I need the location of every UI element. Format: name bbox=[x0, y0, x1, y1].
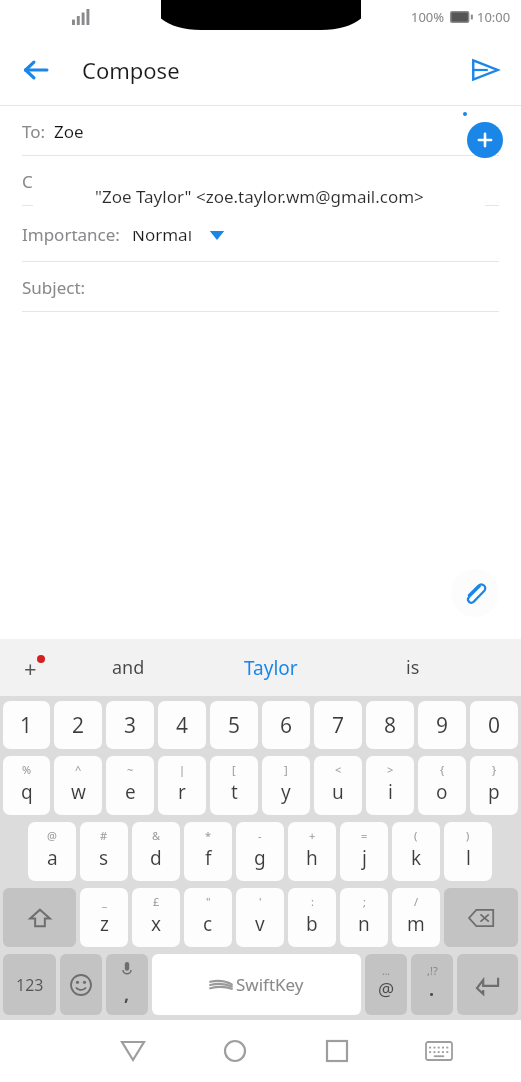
button[interactable]: | bbox=[158, 756, 206, 815]
button[interactable]: = bbox=[340, 822, 388, 881]
button[interactable]: / bbox=[392, 888, 440, 947]
button[interactable]: ,!? bbox=[411, 954, 453, 1015]
button[interactable]: ^ bbox=[54, 756, 102, 815]
staticText: z bbox=[100, 911, 109, 937]
button[interactable]: : bbox=[288, 888, 336, 947]
button[interactable]: ) bbox=[444, 822, 492, 881]
staticText: a bbox=[47, 845, 58, 871]
button[interactable]: Hide keyboard bbox=[388, 1020, 490, 1082]
button[interactable]: Add recipient bbox=[467, 122, 503, 158]
button[interactable]: To: bbox=[0, 106, 521, 156]
button[interactable]: Voice input, comma bbox=[106, 954, 148, 1015]
button[interactable]: ' bbox=[236, 888, 284, 947]
button[interactable]: < bbox=[314, 756, 362, 815]
button[interactable]: 6 bbox=[262, 701, 310, 749]
button[interactable]: } bbox=[470, 756, 518, 815]
staticText: 2 bbox=[72, 711, 85, 740]
staticText: 123 bbox=[16, 974, 44, 996]
staticText: Taylor bbox=[244, 655, 298, 681]
staticText: y bbox=[281, 779, 291, 805]
button[interactable]: & bbox=[132, 822, 180, 881]
staticText: j bbox=[362, 845, 367, 871]
button[interactable]: is bbox=[345, 639, 481, 696]
button[interactable]: _ bbox=[80, 888, 128, 947]
button[interactable]: Back bbox=[12, 46, 60, 94]
button[interactable]: Space bbox=[152, 954, 361, 1015]
button[interactable]: ( bbox=[392, 822, 440, 881]
staticText: SwiftKey bbox=[236, 973, 304, 996]
staticText: t bbox=[231, 779, 238, 805]
staticText: v bbox=[255, 911, 265, 937]
staticText: and bbox=[112, 655, 145, 680]
button[interactable]: % bbox=[3, 756, 50, 815]
button[interactable]: Importance: bbox=[0, 206, 521, 262]
button[interactable]: Taylor bbox=[196, 639, 345, 696]
button[interactable]: 123 bbox=[3, 954, 56, 1015]
button[interactable]: " bbox=[184, 888, 232, 947]
button[interactable]: - bbox=[236, 822, 284, 881]
staticText: Zoe bbox=[54, 120, 84, 143]
button[interactable]: More options bbox=[8, 646, 52, 690]
button[interactable]: Back bbox=[82, 1020, 184, 1082]
staticText: is bbox=[406, 655, 420, 680]
staticText: 5 bbox=[228, 711, 241, 740]
button[interactable]: + bbox=[288, 822, 336, 881]
staticText: # bbox=[100, 828, 108, 843]
staticText: x bbox=[151, 911, 162, 937]
button[interactable]: 4 bbox=[158, 701, 206, 749]
staticText: ; bbox=[363, 894, 366, 909]
staticText: [ bbox=[232, 762, 236, 777]
button[interactable]: Backspace bbox=[444, 888, 518, 947]
button[interactable]: Shift bbox=[3, 888, 76, 947]
button[interactable]: ] bbox=[262, 756, 310, 815]
button[interactable]: 1 bbox=[3, 701, 50, 749]
button[interactable]: £ bbox=[132, 888, 180, 947]
button[interactable]: > bbox=[366, 756, 414, 815]
button[interactable]: 5 bbox=[210, 701, 258, 749]
staticText: { bbox=[440, 762, 445, 777]
staticText: & bbox=[152, 828, 161, 843]
button[interactable]: ... bbox=[365, 954, 407, 1015]
button[interactable]: Subject: bbox=[0, 262, 521, 312]
staticText: > bbox=[387, 762, 394, 777]
staticText: 8 bbox=[384, 711, 397, 740]
button[interactable]: 3 bbox=[106, 701, 154, 749]
button[interactable]: Home bbox=[184, 1020, 286, 1082]
button[interactable]: @ bbox=[28, 822, 76, 881]
staticText: s bbox=[99, 845, 109, 871]
button[interactable]: { bbox=[418, 756, 466, 815]
button[interactable]: # bbox=[80, 822, 128, 881]
button[interactable]: 0 bbox=[470, 701, 518, 749]
button[interactable]: * bbox=[184, 822, 232, 881]
button[interactable]: Emoji bbox=[60, 954, 102, 1015]
staticText: ... bbox=[382, 964, 391, 978]
button[interactable]: Recents bbox=[286, 1020, 388, 1082]
button[interactable]: ; bbox=[340, 888, 388, 947]
button[interactable]: 9 bbox=[418, 701, 466, 749]
staticText: b bbox=[306, 911, 318, 937]
button[interactable]: Cc: bbox=[0, 156, 521, 206]
staticText: i bbox=[388, 779, 393, 805]
staticText: w bbox=[71, 779, 86, 805]
button[interactable]: 7 bbox=[314, 701, 362, 749]
staticText: g bbox=[254, 845, 266, 871]
button[interactable]: 2 bbox=[54, 701, 102, 749]
button[interactable]: ~ bbox=[106, 756, 154, 815]
button[interactable]: "Zoe Taylor" <zoe.taylor.wm@gmail.com> bbox=[33, 161, 485, 231]
button[interactable]: Send bbox=[461, 46, 509, 94]
button[interactable]: 8 bbox=[366, 701, 414, 749]
button[interactable]: and bbox=[60, 639, 196, 696]
button[interactable]: Attach file bbox=[451, 569, 499, 617]
staticText: f bbox=[205, 845, 212, 871]
staticText: Subject: bbox=[22, 276, 86, 299]
button[interactable]: [ bbox=[210, 756, 258, 815]
staticText: ( bbox=[414, 828, 418, 843]
staticText: ] bbox=[284, 762, 288, 777]
staticText: To: bbox=[22, 120, 46, 143]
staticText: | bbox=[179, 762, 186, 777]
staticText: 6 bbox=[280, 711, 293, 740]
staticText: % bbox=[22, 762, 32, 777]
button[interactable]: Enter bbox=[457, 954, 518, 1015]
staticText: e bbox=[125, 779, 136, 805]
staticText: ,!? bbox=[427, 963, 438, 978]
